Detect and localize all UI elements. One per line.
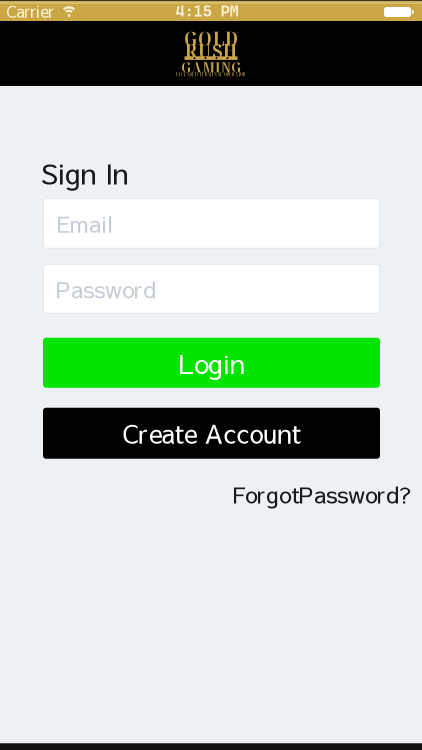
button[interactable]: Email — [43, 198, 380, 249]
staticText: M — [202, 57, 214, 77]
staticText: 4:15 PM — [175, 2, 238, 20]
staticText: S — [212, 37, 222, 64]
staticText: LICENSED TERMINAL OPERATOR — [176, 71, 246, 77]
staticText: I — [215, 57, 220, 77]
button[interactable]: Login — [43, 338, 380, 388]
button[interactable]: Password — [43, 264, 380, 314]
staticText: L — [213, 24, 224, 52]
staticText: R — [185, 37, 197, 64]
staticText: N — [220, 57, 230, 77]
staticText: H — [223, 37, 237, 64]
staticText: Carrier — [6, 0, 54, 22]
staticText: Password — [56, 273, 156, 304]
button[interactable]: Create Account — [43, 408, 380, 459]
staticText: U — [198, 37, 211, 64]
button[interactable]: ForgotPassword? — [232, 479, 412, 509]
staticText: O — [198, 24, 212, 52]
staticText: Create Account — [122, 416, 300, 450]
staticText: A — [192, 57, 202, 77]
staticText: Login — [178, 345, 245, 381]
staticText: ForgotPassword? — [232, 479, 412, 509]
staticText: D — [225, 24, 238, 52]
staticText: G — [184, 24, 197, 52]
staticText: G — [181, 57, 191, 77]
staticText: Sign In — [41, 154, 129, 192]
staticText: G — [231, 57, 241, 77]
staticText: Email — [56, 208, 113, 238]
